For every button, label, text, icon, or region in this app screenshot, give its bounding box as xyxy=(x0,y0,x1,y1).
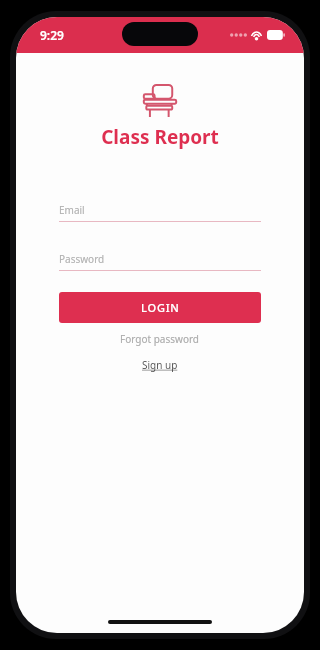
button[interactable]: LOGIN xyxy=(59,292,261,323)
staticText: Sign up xyxy=(142,358,178,372)
staticText: 9:29 xyxy=(40,27,64,43)
staticText: Forgot password xyxy=(120,332,200,346)
button[interactable]: Sign up xyxy=(136,356,184,374)
button[interactable]: Email xyxy=(59,199,261,222)
staticText: Password xyxy=(59,252,105,266)
button[interactable]: Password xyxy=(59,248,261,271)
staticText: Email xyxy=(59,203,85,217)
staticText: Class Report xyxy=(101,124,219,150)
button[interactable]: Forgot password xyxy=(114,330,206,348)
staticText: LOGIN xyxy=(141,300,180,315)
